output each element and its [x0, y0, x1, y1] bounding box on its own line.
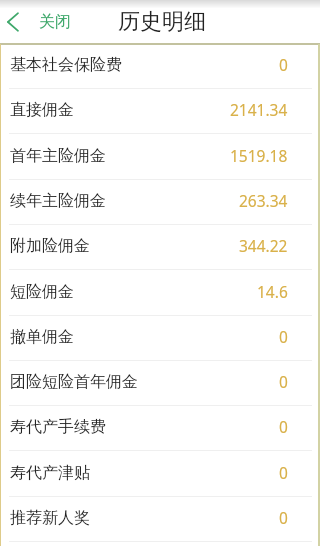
staticText: 寿代产手续费 [10, 417, 106, 437]
staticText: 推荐新人奖 [10, 508, 90, 528]
button[interactable]: 基本社会保险费 [0, 44, 320, 89]
staticText: 关闭 [39, 12, 71, 32]
button[interactable]: 关闭 [0, 0, 82, 43]
staticText: 14.6 [257, 281, 288, 302]
staticText: 直接佣金 [10, 100, 74, 120]
staticText: 撤单佣金 [10, 327, 74, 347]
staticText: 首年主险佣金 [10, 146, 106, 166]
staticText: 263.34 [239, 190, 288, 211]
button[interactable]: 寿代产津贴 [0, 452, 320, 497]
staticText: 0 [279, 416, 288, 437]
staticText: 短险佣金 [10, 282, 74, 302]
staticText: 1519.18 [230, 145, 288, 166]
staticText: 寿代产津贴 [10, 463, 90, 483]
staticText: 2141.34 [230, 99, 288, 120]
button[interactable]: 续年主险佣金 [0, 180, 320, 225]
button[interactable]: 短险佣金 [0, 271, 320, 316]
staticText: 团险短险首年佣金 [10, 372, 138, 392]
button[interactable]: 首年主险佣金 [0, 135, 320, 180]
button[interactable]: 推荐新人奖 [0, 497, 320, 542]
staticText: 0 [279, 462, 288, 483]
button[interactable]: 直接佣金 [0, 89, 320, 134]
staticText: 0 [279, 507, 288, 528]
staticText: 历史明细 [118, 8, 206, 36]
button[interactable]: 寿代产手续费 [0, 406, 320, 451]
staticText: 0 [279, 54, 288, 75]
button[interactable]: 撤单佣金 [0, 316, 320, 361]
button[interactable]: 增员津贴 [0, 542, 320, 546]
staticText: 344.22 [239, 235, 288, 256]
staticText: 附加险佣金 [10, 236, 90, 256]
staticText: 0 [279, 326, 288, 347]
button[interactable]: 团险短险首年佣金 [0, 361, 320, 406]
button[interactable]: 附加险佣金 [0, 225, 320, 270]
staticText: 0 [279, 371, 288, 392]
staticText: 基本社会保险费 [10, 55, 122, 75]
staticText: 续年主险佣金 [10, 191, 106, 211]
